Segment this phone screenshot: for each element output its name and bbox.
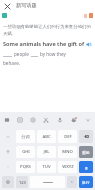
staticText: 一些动物有能够能让人们的行为来查分他们的天赋。 bbox=[3, 24, 92, 36]
staticText: JKL bbox=[43, 149, 50, 155]
button[interactable]: Sticker bbox=[67, 112, 81, 128]
button[interactable]: More bbox=[81, 112, 95, 128]
button[interactable]: Clear bbox=[79, 146, 93, 158]
button[interactable]: Symbols bbox=[2, 130, 14, 143]
staticText: MNO bbox=[62, 149, 73, 155]
button[interactable]: Shift bbox=[2, 146, 14, 158]
button[interactable]: MNO bbox=[58, 146, 77, 158]
button[interactable]: PQRS bbox=[16, 161, 35, 173]
staticText: 换行 bbox=[82, 180, 90, 185]
button[interactable]: GHI bbox=[16, 146, 35, 158]
button[interactable]: Close bbox=[3, 2, 11, 10]
staticText: Some animals have the gift of bbox=[3, 40, 85, 48]
staticText: DEF bbox=[64, 134, 72, 140]
button[interactable]: Select bbox=[79, 161, 93, 173]
staticText: 重输 bbox=[82, 150, 90, 155]
button[interactable]: Theme bbox=[53, 112, 67, 128]
button[interactable]: Punctuation bbox=[67, 176, 77, 188]
button[interactable]: TUV bbox=[37, 161, 56, 173]
button[interactable]: 123 bbox=[16, 176, 28, 188]
staticText: g bbox=[85, 165, 88, 170]
staticText: 123 bbox=[19, 180, 26, 185]
button[interactable]: Settings bbox=[26, 112, 39, 128]
button[interactable]: Enter bbox=[79, 176, 93, 188]
button[interactable]: JKL bbox=[37, 146, 56, 158]
button[interactable]: Emoji bbox=[2, 176, 14, 188]
staticText: 新写话题 bbox=[16, 2, 37, 9]
staticText: by how they bbox=[40, 51, 66, 57]
button[interactable]: Translate bbox=[13, 112, 26, 128]
staticText: people bbox=[14, 51, 29, 57]
button[interactable]: ABC bbox=[37, 130, 56, 143]
button[interactable]: Voice bbox=[39, 112, 53, 128]
staticText: behave. bbox=[3, 60, 20, 66]
staticText: TUV bbox=[42, 164, 51, 170]
button[interactable]: Play audio bbox=[85, 41, 92, 48]
staticText: WXYZ bbox=[62, 164, 74, 170]
button[interactable]: DEF bbox=[58, 130, 77, 143]
button[interactable]: WXYZ bbox=[58, 161, 77, 173]
button[interactable]: Space bbox=[30, 176, 65, 188]
button[interactable]: Keyboard layout bbox=[0, 112, 13, 128]
staticText: PQRS bbox=[20, 164, 31, 170]
staticText: GHI bbox=[22, 149, 30, 155]
staticText: 分词 bbox=[21, 134, 30, 139]
staticText: ABC bbox=[42, 134, 51, 140]
button[interactable]: 分词 bbox=[16, 130, 35, 143]
button[interactable]: Backspace bbox=[79, 130, 93, 143]
